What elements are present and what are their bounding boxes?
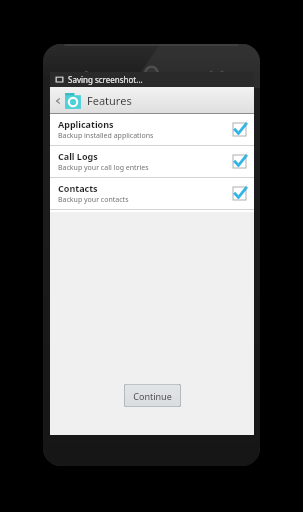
button[interactable]: Applications xyxy=(50,114,254,145)
other: Navigate up xyxy=(54,97,62,105)
button[interactable]: Continue xyxy=(124,384,181,407)
staticText: Backup installed applications xyxy=(58,131,154,141)
staticText: Features xyxy=(87,93,132,108)
staticText: Backup your call log entries xyxy=(58,163,149,173)
button[interactable]: Call Logs checkbox, checked xyxy=(233,155,246,168)
staticText: Backup your contacts xyxy=(58,195,129,205)
button[interactable]: Contacts checkbox, checked xyxy=(233,187,246,200)
button[interactable]: Call Logs xyxy=(50,146,254,177)
staticText: Applications xyxy=(58,118,114,130)
staticText: Saving screenshot... xyxy=(68,74,143,85)
staticText: Continue xyxy=(133,390,172,402)
button[interactable]: Contacts xyxy=(50,178,254,209)
button[interactable]: Navigate up xyxy=(50,87,254,114)
staticText: Call Logs xyxy=(58,150,98,162)
staticText: Contacts xyxy=(58,182,98,194)
button[interactable]: Applications checkbox, checked xyxy=(233,123,246,136)
